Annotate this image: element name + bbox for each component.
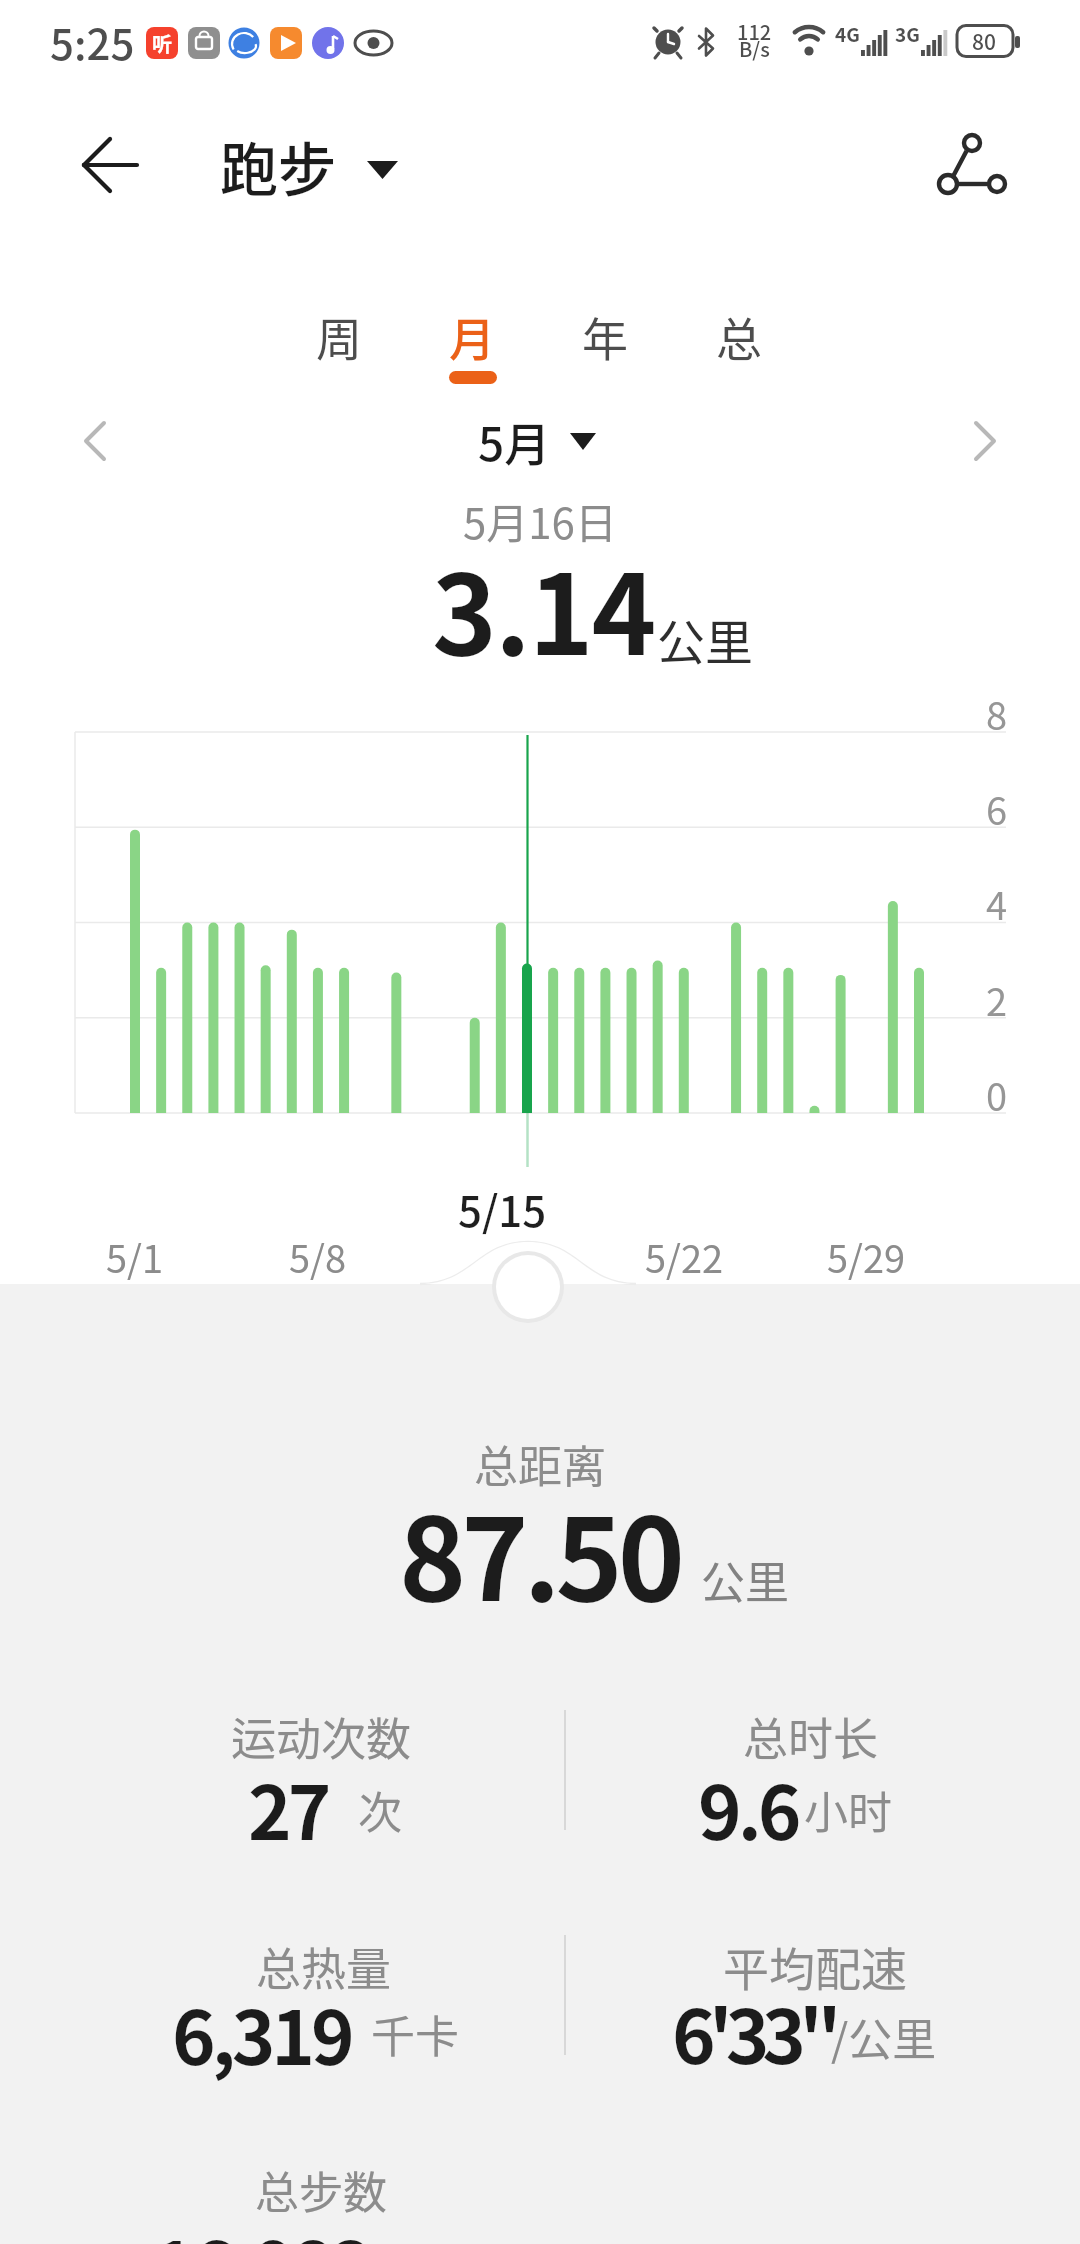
staticText: 周 (316, 303, 362, 370)
staticText: B/s (739, 34, 770, 63)
staticText: 平均配速 (723, 1933, 907, 2000)
staticText: 公里 (701, 1548, 789, 1612)
staticText: 总时长 (743, 1704, 879, 1769)
staticText: 4G (835, 20, 860, 48)
staticText: 5/22 (645, 1229, 724, 1284)
staticText: 跑步 (220, 124, 337, 208)
staticText: 5/1 (106, 1229, 164, 1284)
staticText: 87.50 (399, 1469, 681, 1634)
staticText: 27 (248, 1754, 328, 1861)
staticText: 小时 (804, 1778, 892, 1842)
staticText: 9.6 (698, 1754, 798, 1861)
button[interactable] (455, 402, 625, 482)
staticText: 5/29 (827, 1229, 906, 1284)
staticText: 年 (582, 303, 628, 370)
staticText: 2 (986, 972, 1008, 1027)
staticText: 3.14 (432, 527, 655, 686)
staticText: 听 (152, 29, 172, 58)
staticText: 总距离 (474, 1432, 606, 1496)
button[interactable] (55, 402, 135, 482)
staticText: 运动次数 (231, 1704, 412, 1769)
staticText: 5月 (478, 408, 551, 475)
button[interactable] (417, 292, 527, 387)
button[interactable] (492, 1251, 564, 1323)
staticText: 千卡 (371, 2002, 459, 2066)
staticText: 次 (358, 1778, 402, 1842)
staticText: 6 (986, 781, 1008, 836)
button[interactable] (284, 292, 394, 387)
button[interactable] (205, 130, 410, 202)
staticText: 4 (986, 876, 1008, 931)
staticText: 6'33" (672, 1978, 835, 2085)
button[interactable] (922, 118, 1022, 218)
staticText: 6,319 (172, 1979, 351, 2086)
staticText: 5/8 (289, 1229, 347, 1284)
staticText: 月 (449, 303, 495, 370)
staticText: 8 (986, 686, 1008, 741)
staticText: 3G (895, 20, 920, 48)
button[interactable] (55, 125, 150, 205)
button[interactable] (684, 292, 794, 387)
staticText: 5月16日 (463, 490, 617, 551)
staticText: 总步数 (255, 2158, 387, 2222)
staticText: 0 (986, 1067, 1008, 1122)
staticText: 16,082 (152, 2210, 371, 2244)
staticText: /公里 (831, 2005, 937, 2069)
staticText: 总 (716, 303, 762, 370)
staticText: 112 (737, 17, 772, 46)
staticText: 总热量 (256, 1934, 392, 1999)
staticText: 80 (972, 26, 996, 56)
staticText: 公里 (657, 604, 754, 674)
button[interactable] (945, 402, 1025, 482)
staticText: 5/15 (458, 1178, 547, 1239)
staticText: 5:25 (50, 11, 135, 72)
button[interactable] (550, 292, 660, 387)
